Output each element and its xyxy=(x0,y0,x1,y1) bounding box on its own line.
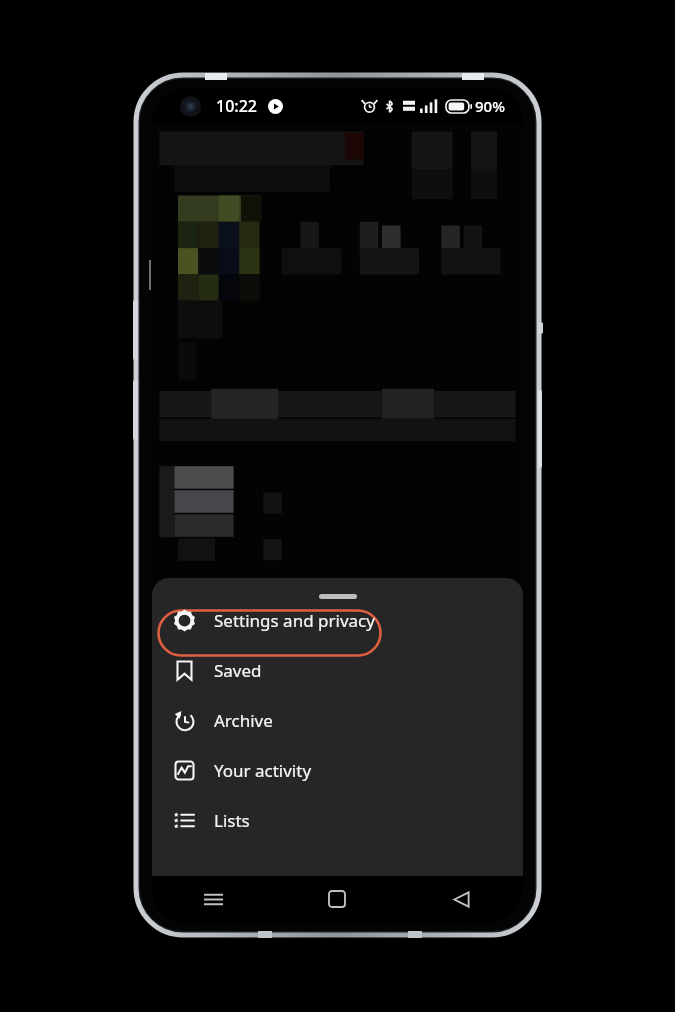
button[interactable]: Back xyxy=(399,876,523,922)
staticText: 90% xyxy=(475,96,505,116)
button[interactable]: Home xyxy=(275,876,399,922)
staticText: Archive xyxy=(214,709,273,732)
button[interactable]: Saved xyxy=(152,658,523,708)
staticText: Lists xyxy=(214,809,250,832)
button[interactable]: Settings and privacy xyxy=(152,608,523,658)
button[interactable]: Recent apps xyxy=(152,876,275,922)
button[interactable]: Your activity xyxy=(152,758,523,808)
staticText: 10:22 xyxy=(216,95,257,117)
staticText: Saved xyxy=(214,659,262,682)
button[interactable]: Lists xyxy=(152,808,523,858)
staticText: Your activity xyxy=(214,759,312,782)
button[interactable]: Archive xyxy=(152,708,523,758)
staticText: Settings and privacy xyxy=(214,609,375,632)
